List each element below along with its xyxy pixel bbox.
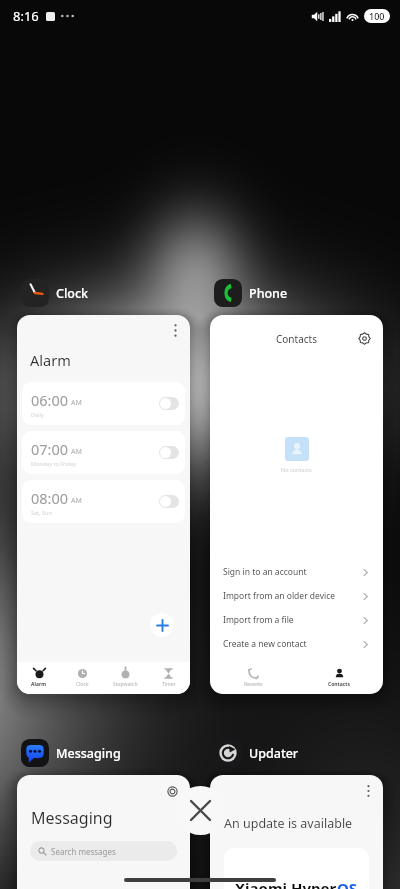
staticText: Messaging xyxy=(31,807,113,829)
button[interactable]: Contacts xyxy=(296,662,383,694)
button[interactable]: Add alarm xyxy=(150,613,174,637)
button[interactable]: Clear all xyxy=(176,786,225,835)
button[interactable]: Import from an older device xyxy=(223,584,370,608)
button[interactable]: Alarm xyxy=(17,662,61,694)
staticText: Sat, Sun xyxy=(31,509,52,516)
staticText: 100 xyxy=(369,10,385,22)
button[interactable]: 06:00 xyxy=(22,382,185,425)
staticText: 08:00 xyxy=(31,488,69,508)
button[interactable]: Clock xyxy=(61,662,104,694)
button[interactable]: 08:00 xyxy=(22,480,185,523)
staticText: Alarm xyxy=(31,681,47,688)
button[interactable]: Clock xyxy=(21,277,89,309)
staticText: Contacts xyxy=(276,332,317,346)
staticText: AM xyxy=(71,496,82,506)
staticText: Clock xyxy=(76,681,89,688)
button[interactable]: Toggle alarm xyxy=(159,446,179,459)
button[interactable]: Timer xyxy=(147,662,190,694)
staticText: Timer xyxy=(162,681,176,688)
staticText: AM xyxy=(71,447,82,457)
staticText: 06:00 xyxy=(31,390,69,410)
staticText: 07:00 xyxy=(31,439,69,459)
button[interactable]: Import from a file xyxy=(223,608,370,632)
staticText: Import from an older device xyxy=(223,590,336,602)
staticText: 8:16 xyxy=(13,7,39,25)
staticText: Messaging xyxy=(56,745,121,762)
staticText: Clock xyxy=(56,285,89,302)
button[interactable]: Toggle alarm xyxy=(159,495,179,508)
staticText: Create a new contact xyxy=(223,638,307,650)
staticText: Stopwatch xyxy=(113,681,138,688)
staticText: AM xyxy=(71,398,82,408)
button[interactable]: Search messages xyxy=(30,841,177,861)
other: More options xyxy=(367,785,370,797)
staticText: Daily xyxy=(31,411,44,418)
staticText: Updater xyxy=(249,745,299,762)
staticText: OS xyxy=(337,878,358,889)
staticText: An update is available xyxy=(224,815,353,832)
button[interactable]: Phone xyxy=(214,277,288,309)
button[interactable]: Updater xyxy=(214,737,299,769)
staticText: Contacts xyxy=(328,681,351,688)
staticText: Xiaomi Hyper xyxy=(235,878,337,889)
other: More options xyxy=(174,324,177,337)
staticText: Alarm xyxy=(30,350,71,370)
button[interactable]: Toggle alarm xyxy=(159,397,179,410)
button[interactable]: Stopwatch xyxy=(104,662,147,694)
staticText: Monday to Friday xyxy=(31,460,76,467)
other: Settings xyxy=(167,786,178,797)
other: Settings xyxy=(358,332,371,345)
staticText: Search messages xyxy=(51,846,116,857)
button[interactable]: 07:00 xyxy=(22,431,185,474)
staticText: Recents xyxy=(244,681,263,688)
staticText: Sign in to an account xyxy=(223,566,307,578)
button[interactable]: Recents xyxy=(210,662,296,694)
staticText: Phone xyxy=(249,285,288,302)
button[interactable]: Messaging xyxy=(21,737,121,769)
staticText: No contacts xyxy=(281,466,312,473)
staticText: Import from a file xyxy=(223,614,294,626)
button[interactable]: Create a new contact xyxy=(223,632,370,656)
button[interactable]: Sign in to an account xyxy=(223,560,370,584)
